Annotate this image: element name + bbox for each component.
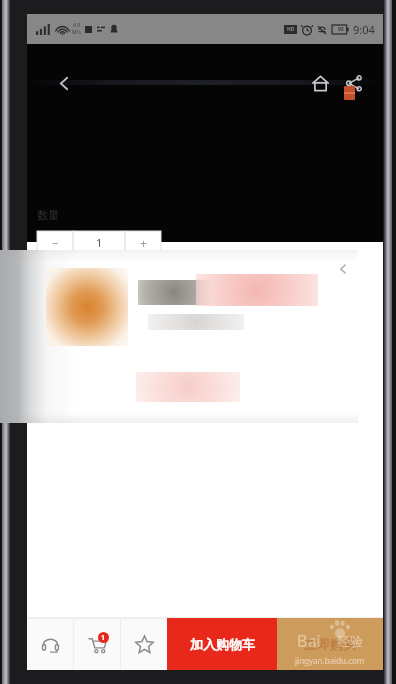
staticText: 加入购物车 xyxy=(190,636,255,652)
button[interactable]: Cart xyxy=(74,618,120,670)
button[interactable]: Increase xyxy=(125,231,161,254)
staticText: jingyan.baidu.com xyxy=(295,655,365,666)
staticText: 1 xyxy=(101,633,106,643)
staticText: + xyxy=(140,235,147,251)
staticText: HD xyxy=(287,26,295,33)
staticText: 数量 xyxy=(37,208,59,222)
button[interactable]: 1 xyxy=(73,231,125,254)
staticText: 9:04 xyxy=(353,22,375,37)
staticText: 1 xyxy=(96,235,103,250)
button[interactable]: 立即购买 xyxy=(277,618,383,670)
staticText: 4.9 xyxy=(73,22,81,29)
button[interactable]: Back xyxy=(47,66,81,100)
button[interactable]: Favorite xyxy=(121,618,167,670)
staticText: M/s xyxy=(72,29,81,36)
staticText: − xyxy=(52,235,59,251)
button[interactable]: Decrease xyxy=(37,231,73,254)
button[interactable]: 加入购物车 xyxy=(167,618,277,670)
staticText: 经验 xyxy=(337,633,363,649)
button[interactable]: Home xyxy=(303,66,337,100)
button[interactable]: Close xyxy=(330,256,356,282)
staticText: Bai xyxy=(297,630,321,652)
button[interactable]: Share xyxy=(337,66,371,100)
staticText: 93 xyxy=(338,26,344,33)
staticText: 立即购买 xyxy=(304,636,356,652)
button[interactable]: Customer service xyxy=(27,618,73,670)
